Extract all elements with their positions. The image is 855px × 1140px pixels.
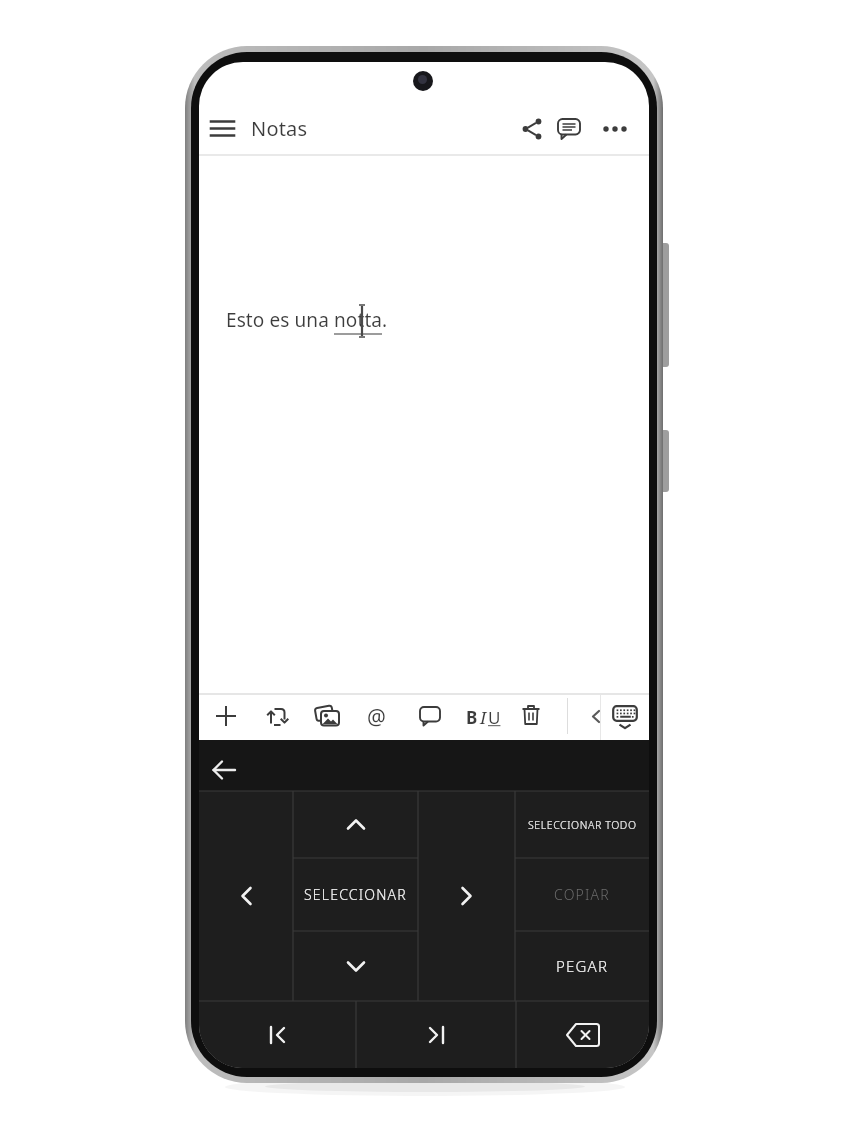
button[interactable]: SELECCIONAR xyxy=(293,858,418,931)
staticText: SELECCIONAR TODO xyxy=(528,818,637,832)
button[interactable] xyxy=(199,791,293,1001)
staticText: @ xyxy=(367,703,386,732)
button[interactable]: SELECCIONAR TODO xyxy=(515,791,649,858)
button[interactable] xyxy=(516,1001,649,1068)
button[interactable] xyxy=(608,700,642,734)
button[interactable] xyxy=(263,702,291,730)
staticText: Notas xyxy=(251,115,308,142)
button[interactable] xyxy=(418,791,515,1001)
staticText: COPIAR xyxy=(554,885,610,904)
button[interactable] xyxy=(293,791,418,858)
staticText: SELECCIONAR xyxy=(304,885,407,904)
button[interactable] xyxy=(203,752,245,788)
button[interactable] xyxy=(416,702,444,730)
button[interactable] xyxy=(517,114,546,143)
button[interactable]: COPIAR xyxy=(515,858,649,931)
staticText: Esto es una notta. xyxy=(226,307,388,333)
staticText: PEGAR xyxy=(556,956,609,976)
button[interactable] xyxy=(517,702,545,730)
staticText: I xyxy=(480,706,487,729)
button[interactable] xyxy=(205,112,239,144)
button[interactable] xyxy=(554,114,584,143)
staticText: B xyxy=(466,706,478,729)
button[interactable] xyxy=(356,1001,516,1068)
button[interactable] xyxy=(199,1001,356,1068)
button[interactable]: PEGAR xyxy=(515,931,649,1001)
staticText: U xyxy=(488,706,501,729)
button[interactable] xyxy=(313,702,341,730)
button[interactable] xyxy=(600,114,630,143)
button[interactable] xyxy=(212,702,240,730)
button[interactable] xyxy=(293,931,418,1001)
